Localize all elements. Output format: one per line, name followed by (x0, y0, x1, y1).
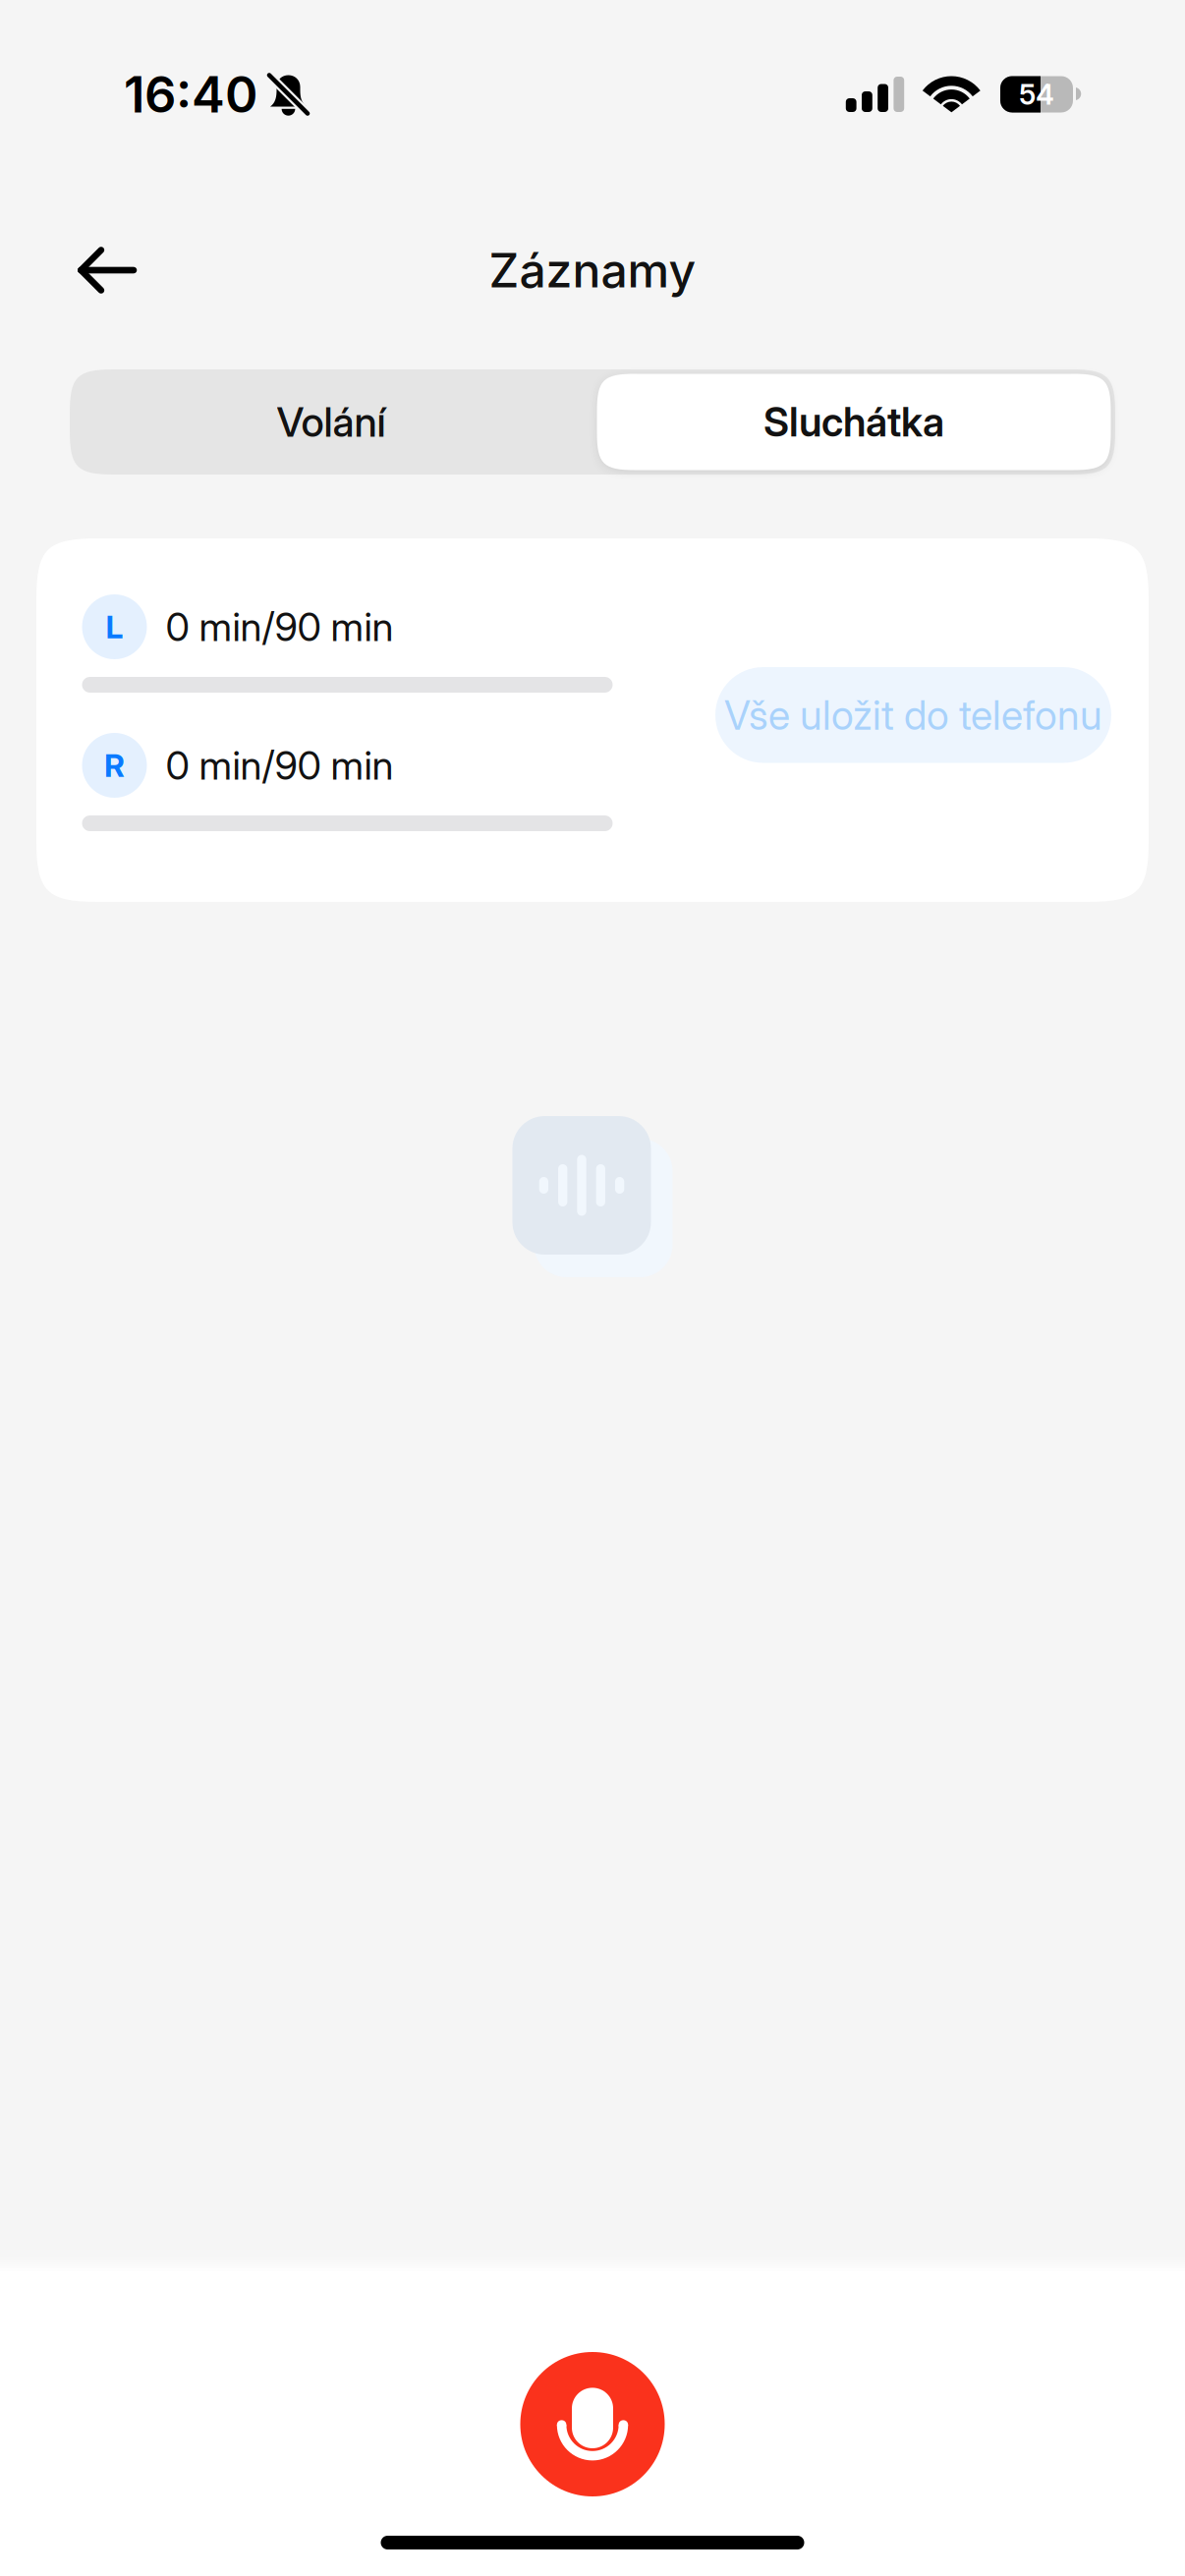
staticText: Vše uložit do telefonu (724, 691, 1102, 739)
button[interactable]: Volání (70, 369, 592, 475)
staticText: Sluchátka (763, 398, 944, 446)
button[interactable]: Sluchátka (592, 369, 1115, 475)
staticText: Záznamy (489, 242, 696, 299)
staticText: 0 min/90 min (166, 742, 394, 789)
staticText: L (106, 608, 123, 646)
staticText: Volání (277, 397, 386, 447)
staticText: 0 min/90 min (166, 603, 394, 650)
staticText: 16:40 (124, 64, 257, 124)
button[interactable]: Back (57, 224, 155, 316)
staticText: R (104, 746, 125, 784)
staticText: 54 (1019, 77, 1054, 111)
button[interactable]: Record (520, 2352, 665, 2496)
button[interactable]: Vše uložit do telefonu (715, 667, 1111, 763)
